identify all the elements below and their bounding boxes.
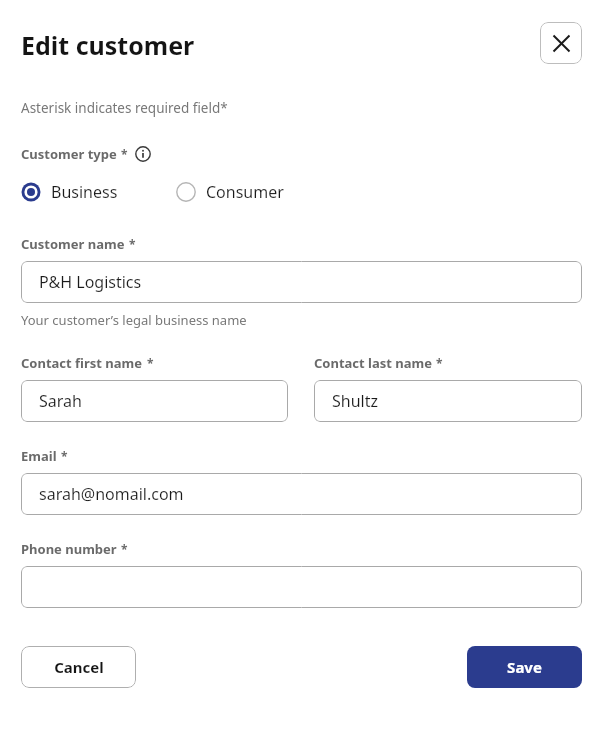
staticText: Shultz — [332, 390, 378, 412]
staticText: * — [147, 355, 154, 371]
staticText: Contact last name — [314, 354, 432, 372]
button[interactable]: Sarah — [21, 380, 288, 422]
button[interactable]: Shultz — [314, 380, 582, 422]
staticText: Business — [51, 181, 118, 203]
staticText: Cancel — [54, 657, 104, 677]
staticText: sarah@nomail.com — [39, 483, 184, 505]
staticText: Customer name — [21, 235, 125, 253]
staticText: * — [129, 236, 136, 252]
staticText: * — [436, 355, 443, 371]
staticText: Contact first name — [21, 354, 143, 372]
button[interactable]: Cancel — [21, 646, 136, 688]
staticText: Phone number — [21, 540, 117, 558]
button[interactable]: Business — [21, 181, 118, 203]
button[interactable]: More information about customer type — [135, 146, 151, 162]
button[interactable]: Close — [540, 22, 582, 64]
button[interactable]: Save — [467, 646, 582, 688]
button[interactable]: Consumer — [176, 181, 284, 203]
staticText: Customer type — [21, 145, 117, 163]
staticText: Save — [507, 657, 542, 677]
staticText: Sarah — [39, 390, 82, 412]
staticText: Asterisk indicates required field* — [21, 99, 228, 117]
button[interactable]: sarah@nomail.com — [21, 473, 582, 515]
staticText: Your customer’s legal business name — [21, 311, 247, 329]
staticText: * — [121, 541, 128, 557]
staticText: * — [61, 448, 68, 464]
button[interactable] — [21, 566, 582, 608]
staticText: * — [121, 146, 128, 162]
staticText: Consumer — [206, 181, 284, 203]
staticText: Edit customer — [21, 28, 195, 62]
staticText: Email — [21, 447, 57, 465]
button[interactable]: P&H Logistics — [21, 261, 582, 303]
staticText: P&H Logistics — [39, 271, 142, 293]
